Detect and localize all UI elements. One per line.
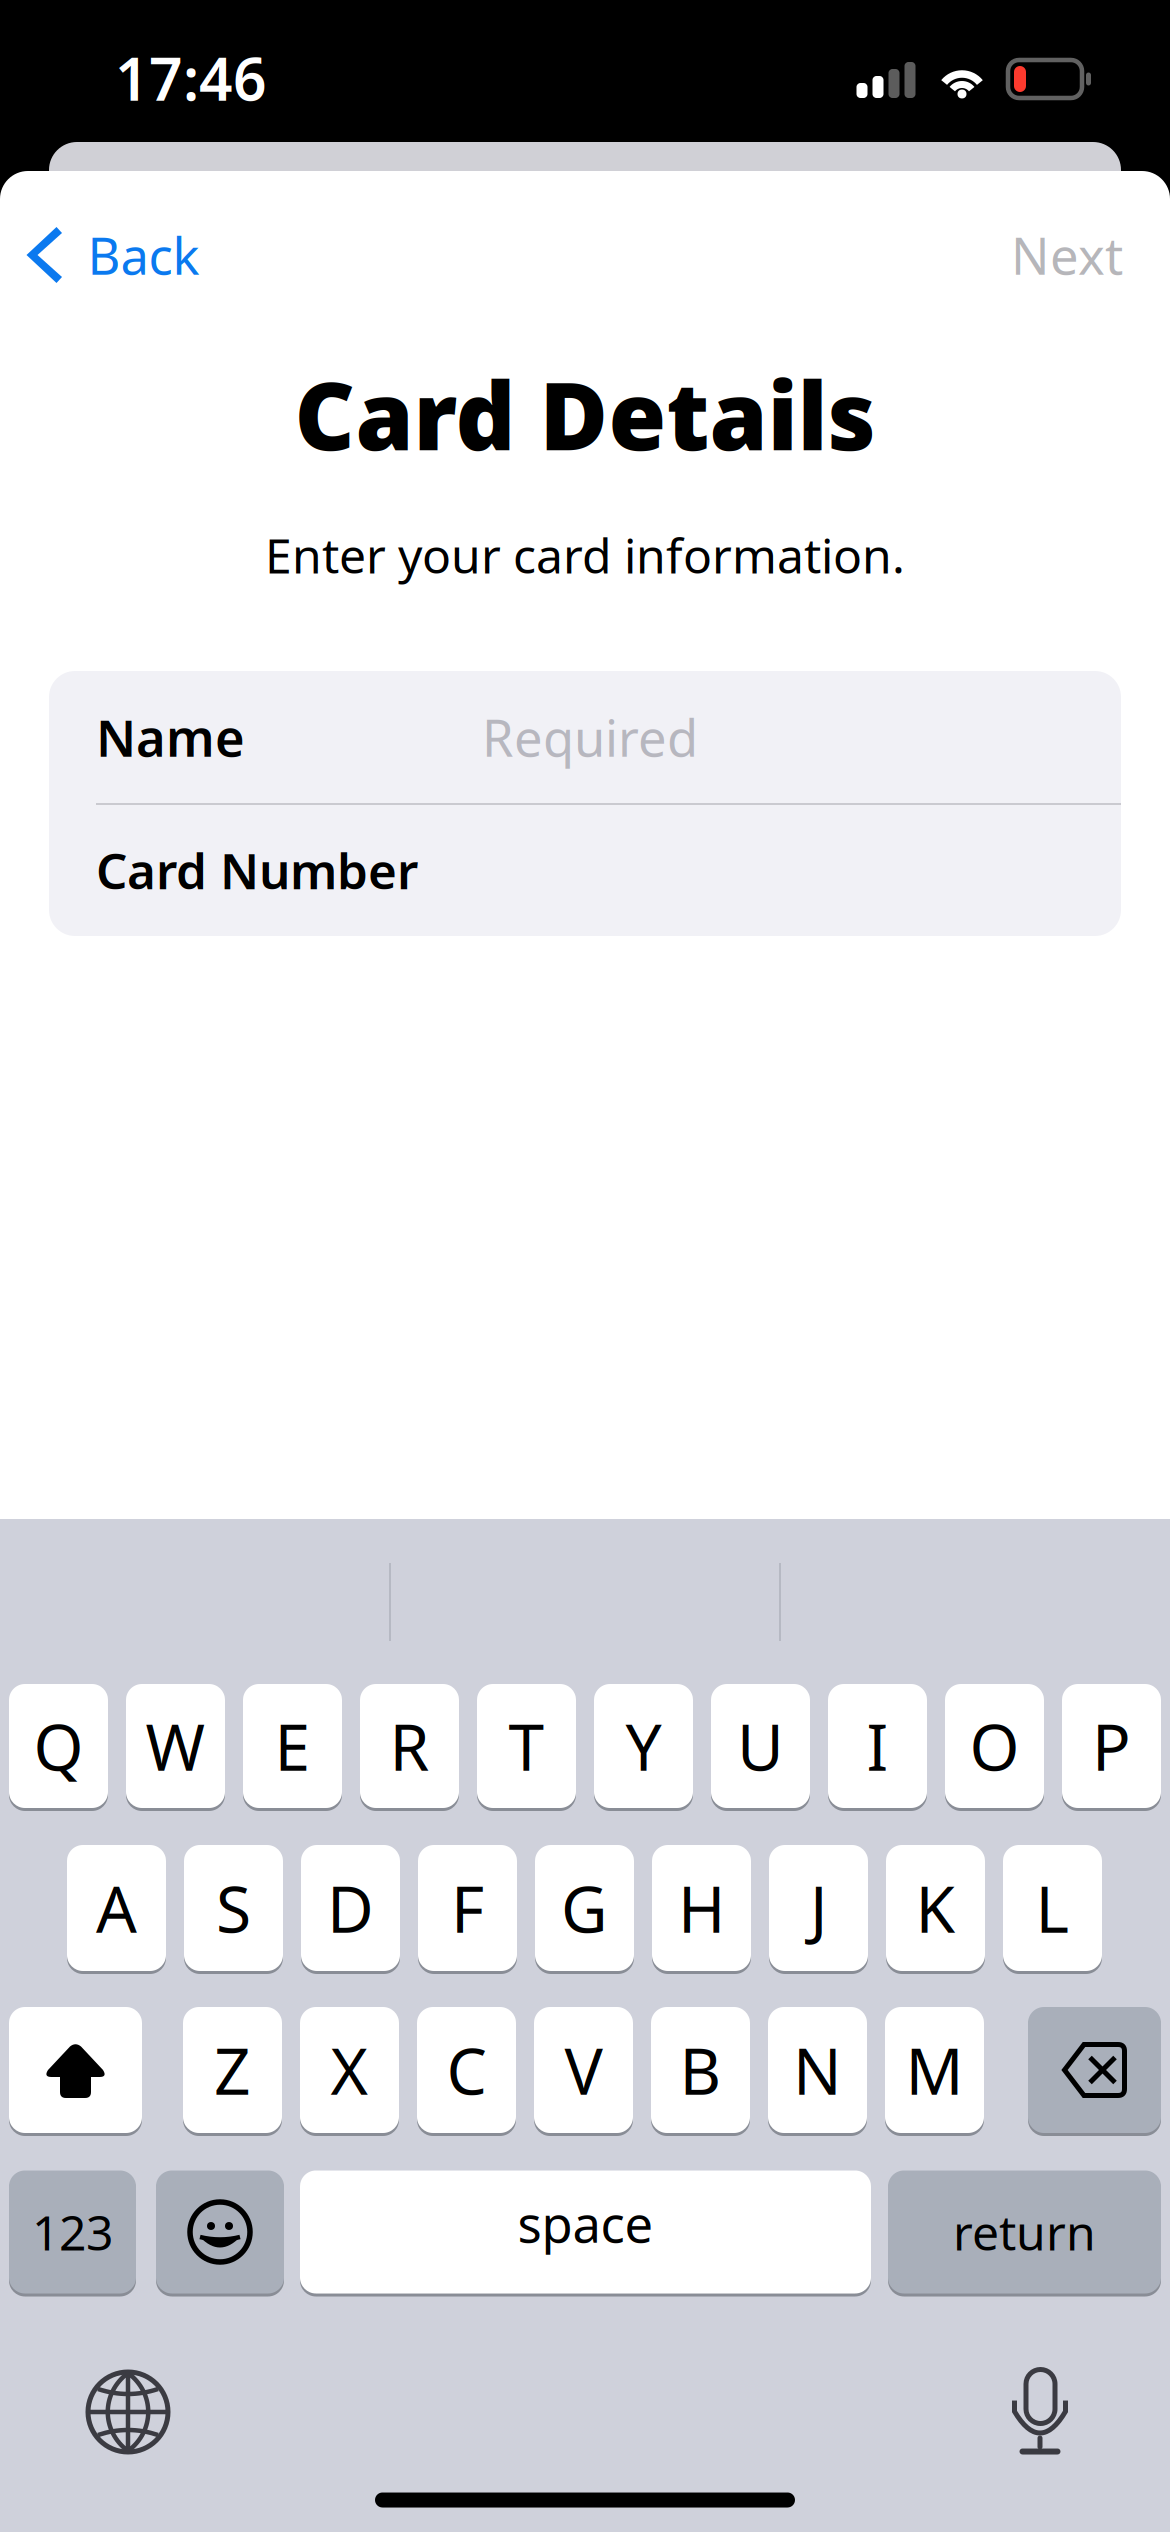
button[interactable]: R (360, 1682, 459, 1809)
staticText: K (915, 1865, 955, 1950)
button[interactable]: return (888, 2169, 1161, 2295)
button[interactable]: F (418, 1843, 517, 1972)
staticText: B (679, 2027, 721, 2112)
button[interactable]: T (477, 1682, 576, 1809)
staticText: H (678, 1865, 725, 1950)
staticText: Required (482, 703, 698, 771)
button[interactable]: Delete (1028, 2005, 1161, 2134)
button[interactable]: B (651, 2005, 750, 2134)
button[interactable]: E (243, 1682, 342, 1809)
button[interactable]: Y (594, 1682, 693, 1809)
button[interactable]: N (768, 2005, 867, 2134)
staticText: T (508, 1703, 544, 1788)
staticText: Card Number (96, 837, 418, 903)
button[interactable]: A (67, 1843, 166, 1972)
button[interactable]: L (1003, 1843, 1102, 1972)
button[interactable]: D (301, 1843, 400, 1972)
staticText: S (216, 1865, 251, 1950)
button[interactable]: Emoji (156, 2169, 284, 2295)
staticText: 123 (32, 2200, 113, 2264)
button[interactable]: 123 (9, 2169, 136, 2295)
staticText: U (737, 1703, 784, 1788)
staticText: A (96, 1865, 137, 1950)
staticText: Q (33, 1703, 83, 1788)
button[interactable]: V (534, 2005, 633, 2134)
staticText: return (953, 2200, 1096, 2264)
button[interactable]: P (1062, 1682, 1161, 1809)
staticText: C (446, 2027, 486, 2112)
staticText: Y (625, 1703, 661, 1788)
staticText: J (810, 1865, 827, 1950)
staticText: E (274, 1703, 310, 1788)
staticText: M (905, 2027, 963, 2112)
staticText: space (517, 2189, 653, 2257)
button[interactable]: I (828, 1682, 927, 1809)
button[interactable]: K (886, 1843, 985, 1972)
button[interactable]: X (300, 2005, 399, 2134)
button[interactable]: Next (975, 191, 1159, 319)
staticText: P (1092, 1703, 1131, 1788)
button[interactable]: M (885, 2005, 984, 2134)
staticText: G (561, 1865, 608, 1950)
staticText: W (145, 1703, 205, 1788)
staticText: N (793, 2027, 842, 2112)
staticText: Next (1011, 221, 1123, 289)
button[interactable]: O (945, 1682, 1044, 1809)
staticText: F (451, 1865, 484, 1950)
staticText: Back (87, 221, 199, 289)
button[interactable]: Card Number (49, 804, 1121, 936)
button[interactable]: J (769, 1843, 868, 1972)
staticText: I (866, 1703, 888, 1788)
button[interactable]: Name (49, 671, 1121, 803)
button[interactable]: Shift (9, 2005, 142, 2134)
staticText: X (330, 2027, 368, 2112)
staticText: Name (96, 703, 245, 771)
staticText: R (389, 1703, 429, 1788)
button[interactable]: Next keyboard (63, 2347, 193, 2477)
staticText: Enter your card information. (265, 523, 905, 587)
button[interactable]: Q (9, 1682, 108, 1809)
staticText: V (564, 2027, 602, 2112)
button[interactable]: H (652, 1843, 751, 1972)
button[interactable]: Dictation (975, 2347, 1105, 2477)
button[interactable]: G (535, 1843, 634, 1972)
staticText: L (1035, 1865, 1069, 1950)
button[interactable]: U (711, 1682, 810, 1809)
staticText: 17:46 (115, 39, 267, 117)
button[interactable]: Back (0, 191, 233, 319)
button[interactable]: S (184, 1843, 283, 1972)
staticText: O (969, 1703, 1019, 1788)
staticText: D (327, 1865, 374, 1950)
staticText: Z (214, 2027, 251, 2112)
staticText: Card Details (294, 352, 875, 476)
button[interactable]: C (417, 2005, 516, 2134)
button[interactable]: space (300, 2169, 871, 2295)
button[interactable]: W (126, 1682, 225, 1809)
button[interactable]: Z (183, 2005, 282, 2134)
